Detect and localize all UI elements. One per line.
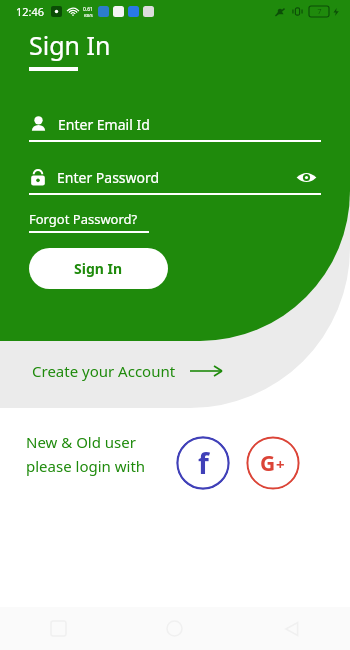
staticText: Sign In [29,28,111,62]
staticText: Create your Account [32,361,176,381]
staticText: Forgot Password? [29,210,138,228]
staticText: please login with [26,456,146,476]
button[interactable]: Sign In [29,248,168,289]
staticText: 12:46 [16,4,45,19]
button[interactable]: Enter Email Id [29,106,321,142]
staticText: Sign In [74,259,123,278]
staticText: New & Old user [26,432,136,452]
staticText: 7 [317,7,322,17]
button[interactable]: Show password [291,162,321,192]
button[interactable]: Sign in with Google [246,436,300,490]
staticText: + [276,454,285,474]
button[interactable]: Forgot Password? [29,210,149,233]
button[interactable]: Enter Password [29,159,321,195]
staticText: G [260,449,276,478]
button[interactable]: Sign in with Facebook [176,436,230,490]
button[interactable]: Create your Account [32,353,222,389]
staticText: Enter Email Id [58,115,150,134]
staticText: Enter Password [57,168,160,187]
staticText: KB/S [84,13,93,18]
staticText: 0.61 [83,6,93,13]
staticText: f [198,444,209,482]
